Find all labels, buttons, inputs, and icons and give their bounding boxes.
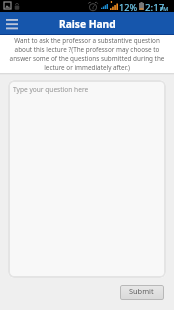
staticText: 12% <box>119 1 138 13</box>
button[interactable]: Menu <box>4 16 20 32</box>
button[interactable]: Type your question here <box>8 80 166 278</box>
staticText: Want to ask the professor a substantive … <box>9 36 165 72</box>
button[interactable]: Submit <box>120 285 164 300</box>
staticText: Submit <box>129 286 154 296</box>
staticText: PM <box>160 5 169 12</box>
staticText: Raise Hand <box>59 17 116 31</box>
staticText: 2:17 <box>145 1 165 13</box>
staticText: Type your question here <box>13 85 89 94</box>
